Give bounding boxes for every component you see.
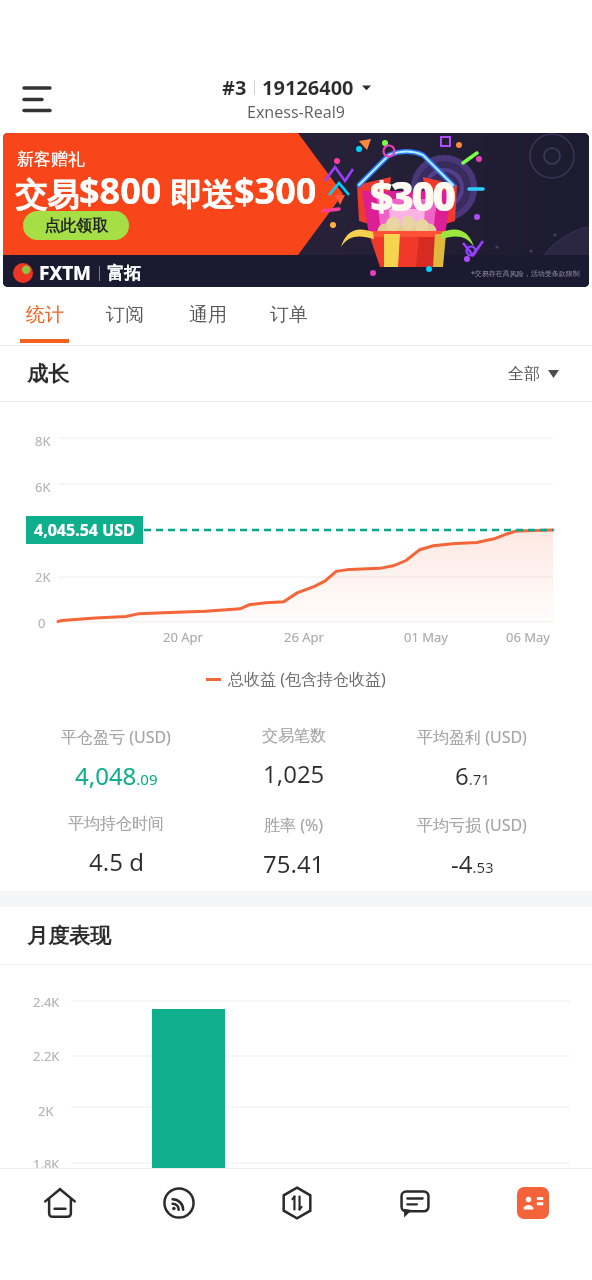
button[interactable]: 订单	[249, 292, 329, 345]
staticText: 全部	[508, 364, 540, 384]
button[interactable]: 订阅	[85, 292, 165, 345]
staticText: 2K	[38, 1102, 54, 1120]
staticText: 2.2K	[33, 1047, 60, 1065]
staticText: 总收益 (包含持仓收益)	[228, 668, 386, 690]
staticText: 交易	[15, 175, 79, 215]
staticText: 1.8K	[33, 1155, 60, 1173]
staticText: 月度表现	[27, 923, 111, 949]
staticText: $300	[370, 168, 454, 222]
button[interactable]: 全部	[502, 358, 565, 390]
staticText: 胜率 (%)	[264, 814, 324, 836]
staticText: 1,025	[263, 757, 325, 790]
button[interactable]: Profile	[474, 1168, 592, 1280]
staticText: 富拓	[107, 263, 141, 284]
button[interactable]: 统计	[4, 292, 84, 345]
staticText: 8K	[35, 432, 51, 450]
staticText: 新客赠礼	[17, 149, 85, 170]
staticText: Exness-Real9	[247, 101, 345, 123]
staticText: 75.41	[263, 847, 325, 880]
staticText: 4,048.09	[75, 759, 158, 792]
staticText: 4,045.54 USD	[34, 519, 135, 541]
staticText: $300	[234, 166, 317, 215]
staticText: 01 May	[404, 628, 448, 646]
staticText: 统计	[26, 303, 64, 327]
button[interactable]: Home	[0, 1168, 119, 1280]
staticText: 通用	[189, 303, 227, 327]
button[interactable]: 点此领取	[23, 211, 129, 240]
staticText: 平均亏损 (USD)	[417, 814, 527, 836]
staticText: 交易笔数	[262, 726, 326, 746]
button[interactable]: 通用	[168, 292, 248, 345]
staticText: 即送	[170, 175, 234, 215]
staticText: 成长	[27, 361, 69, 387]
staticText: *交易存在高风险，活动受条款限制	[471, 269, 580, 279]
staticText: 平均持仓时间	[68, 814, 164, 834]
staticText: -4.53	[451, 847, 494, 880]
staticText: 20 Apr	[163, 628, 203, 646]
staticText: 06 May	[506, 628, 550, 646]
staticText: 4.5 d	[89, 845, 144, 878]
staticText: 0	[38, 614, 46, 632]
button[interactable]: Trade	[238, 1168, 356, 1280]
staticText: 平均盈利 (USD)	[417, 726, 527, 748]
staticText: 平仓盈亏 (USD)	[61, 726, 171, 748]
staticText: 6K	[35, 478, 51, 496]
button[interactable]: Signals	[119, 1168, 238, 1280]
button[interactable]: #3	[222, 74, 371, 101]
button[interactable]: Messages	[356, 1168, 474, 1280]
staticText: 6.71	[455, 759, 490, 792]
staticText: #3	[222, 74, 247, 101]
staticText: FXTM	[39, 260, 92, 286]
button[interactable]: $300	[3, 133, 589, 287]
staticText: 2K	[35, 568, 51, 586]
staticText: $800	[79, 166, 162, 215]
staticText: 订阅	[106, 303, 144, 327]
staticText: 2.4K	[33, 993, 60, 1011]
button[interactable]: Menu	[9, 75, 65, 123]
staticText: 26 Apr	[284, 628, 324, 646]
staticText: 点此领取	[44, 216, 108, 236]
staticText: 19126400	[262, 74, 354, 101]
staticText: 订单	[270, 303, 308, 327]
